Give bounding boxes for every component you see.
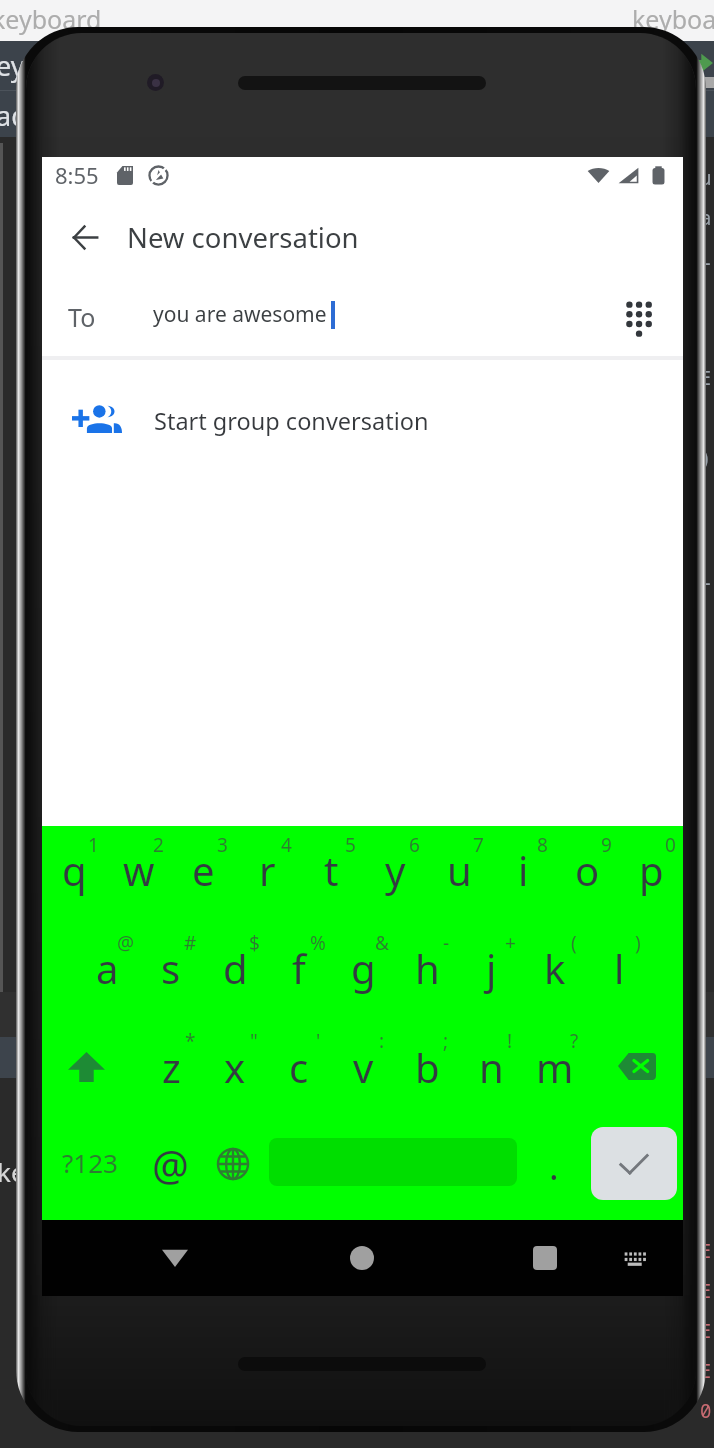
button[interactable]: Home [332,1220,392,1296]
staticText: 9 [601,832,612,858]
staticText: n [479,1040,504,1094]
staticText: ( [571,930,577,956]
staticText: u [447,843,472,897]
staticText: y [385,843,406,897]
staticText: . [549,1142,559,1191]
button[interactable]: Shift [42,1022,139,1121]
button[interactable]: Start group conversation [42,360,683,480]
staticText: 8 [537,832,548,858]
button[interactable]: & [331,924,395,1022]
button[interactable]: + [459,924,523,1022]
staticText: New conversation [127,219,359,256]
button[interactable]: 7 [427,826,491,924]
staticText: 6 [409,832,420,858]
button[interactable]: : [331,1022,395,1121]
button[interactable]: 4 [235,826,299,924]
button[interactable]: # [139,924,203,1022]
staticText: $ [249,930,260,956]
staticText: % [310,930,326,956]
button[interactable]: $ [203,924,267,1022]
staticText: E [700,1238,712,1278]
staticText: z [162,1040,181,1094]
staticText: j [486,941,497,995]
staticText: 4 [281,832,292,858]
button[interactable]: 0 [619,826,683,924]
button[interactable]: Back [42,194,128,281]
button[interactable]: 2 [107,826,171,924]
button[interactable]: Change language [201,1121,265,1220]
button[interactable]: Backspace [587,1022,683,1121]
staticText: E [700,365,712,405]
staticText: l [614,941,625,995]
staticText: : [379,1028,385,1054]
button[interactable]: % [267,924,331,1022]
button[interactable]: @ [138,1121,202,1220]
button[interactable]: Switch keyboard [605,1220,665,1296]
staticText: Start group conversation [154,405,429,437]
staticText: r [259,843,276,897]
button[interactable]: 3 [171,826,235,924]
staticText: you are awesome [153,300,327,329]
button[interactable]: Back [145,1220,205,1296]
staticText: L [700,245,712,285]
staticText: keyboard [632,2,714,36]
button[interactable]: . [526,1121,582,1220]
staticText: o [575,843,600,897]
staticText: ! [507,1028,513,1054]
staticText: 8:55 [55,160,99,190]
staticText: b [415,1040,440,1094]
staticText: t [324,843,339,897]
staticText: f [292,941,306,995]
button[interactable]: 5 [299,826,363,924]
staticText: d [223,941,248,995]
staticText: g [351,941,376,995]
button[interactable]: ? [523,1022,587,1121]
staticText: q [62,843,87,897]
button[interactable]: ' [267,1022,331,1121]
staticText: - [443,930,450,956]
staticText: To [68,300,96,334]
button[interactable]: 8 [491,826,555,924]
staticText: E [700,1318,712,1358]
button[interactable]: ; [395,1022,459,1121]
button[interactable]: " [203,1022,267,1121]
button[interactable]: Dial pad [608,281,683,356]
staticText: 3 [217,832,228,858]
staticText: * [185,1028,196,1054]
button[interactable]: ) [587,924,651,1022]
button[interactable]: * [139,1022,203,1121]
staticText: " [250,1028,258,1054]
staticText: 2 [153,832,164,858]
button[interactable]: 9 [555,826,619,924]
staticText: i [518,843,529,897]
staticText: ke [0,1154,26,1189]
button[interactable]: @ [75,924,139,1022]
staticText: 5 [345,832,356,858]
staticText: 1 [88,832,99,858]
button[interactable]: Space [265,1121,521,1220]
button[interactable]: ?123 [44,1121,136,1220]
button[interactable]: ( [523,924,587,1022]
button[interactable]: ! [459,1022,523,1121]
staticText: L [700,565,712,605]
button[interactable]: - [395,924,459,1022]
staticText: u [700,165,712,205]
staticText: 7 [473,832,484,858]
staticText: 0 [700,1398,712,1438]
staticText: v [353,1040,374,1094]
button[interactable]: 1 [42,826,107,924]
button[interactable]: Recent apps [515,1220,575,1296]
button[interactable]: 6 [363,826,427,924]
staticText: keyboard [0,2,102,36]
staticText: x [224,1040,246,1094]
staticText: ' [316,1028,321,1054]
staticText: ?123 [62,1145,118,1180]
staticText: e [192,843,215,897]
staticText: w [123,843,155,897]
staticText: + [505,930,516,956]
button[interactable]: Enter [591,1127,677,1200]
staticText: h [415,941,440,995]
staticText: p [639,843,664,897]
staticText: E [700,1278,712,1318]
staticText: @ [117,930,135,956]
